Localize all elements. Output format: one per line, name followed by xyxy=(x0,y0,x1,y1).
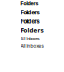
staticText: Folders xyxy=(20,27,43,34)
staticText: Folders xyxy=(20,18,39,25)
staticText: All Inboxes xyxy=(20,43,43,49)
staticText: All Inboxes xyxy=(20,36,39,41)
staticText: Folders xyxy=(20,0,38,6)
staticText: Folders xyxy=(20,8,39,16)
